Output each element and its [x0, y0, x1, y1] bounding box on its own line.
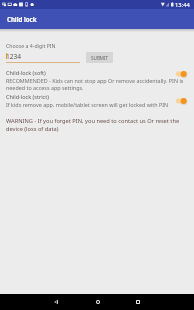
- staticText: Choose a 4-digit PIN: [6, 42, 56, 49]
- staticText: Child-lock (soft): [6, 69, 46, 76]
- staticText: 13:44: [175, 1, 190, 9]
- staticText: RECOMMENDED - Kids can not stop app Or r…: [6, 77, 188, 92]
- button[interactable]: SUBMIT: [86, 52, 113, 63]
- staticText: If kids remove app, mobile/tablet screen…: [6, 101, 169, 108]
- button[interactable]: Back: [45, 294, 66, 310]
- staticText: Child lock: [7, 15, 37, 23]
- button[interactable]: Recent apps: [127, 294, 148, 310]
- staticText: 1234: [6, 52, 22, 61]
- staticText: SUBMIT: [91, 55, 109, 61]
- staticText: WARNING - If you forget PIN, you need to…: [6, 117, 188, 133]
- button[interactable]: Toggle child lock: [175, 95, 191, 107]
- button[interactable]: Home: [87, 294, 108, 310]
- staticText: Child-lock (strict): [6, 93, 49, 100]
- button[interactable]: Toggle child lock: [175, 68, 191, 80]
